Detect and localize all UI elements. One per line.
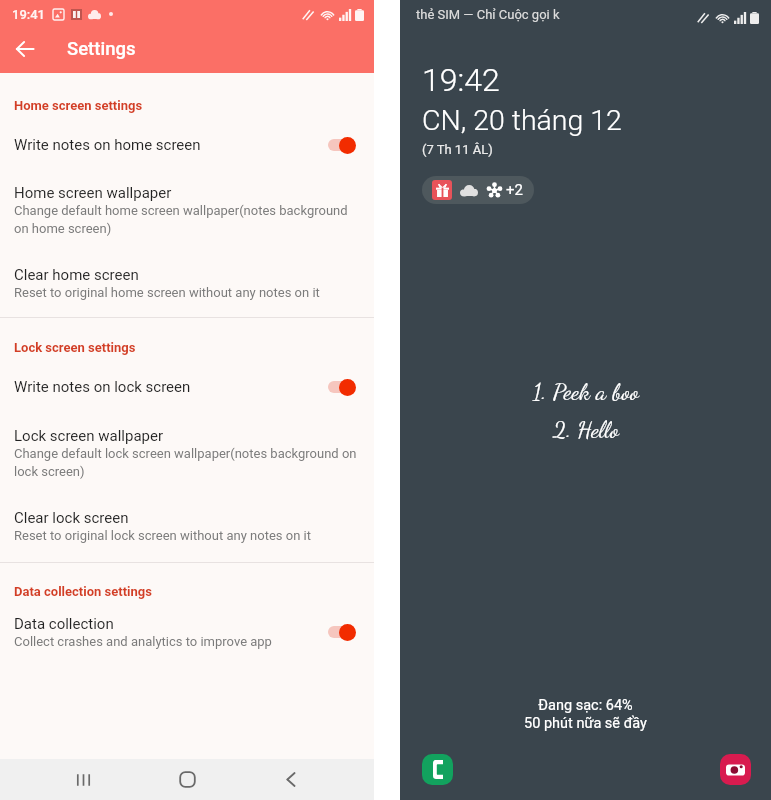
staticText: +2 (506, 181, 523, 199)
staticText: 1. Peek a boo (533, 377, 639, 405)
button[interactable]: Clear home screen (0, 266, 374, 300)
staticText: Settings (67, 38, 136, 60)
button[interactable]: Data collection (0, 615, 374, 649)
staticText: thẻ SIM — Chỉ Cuộc gọi k (416, 7, 560, 22)
button[interactable]: Back (4, 28, 46, 69)
staticText: CN, 20 tháng 12 (422, 104, 622, 137)
staticText: Home screen wallpaper (14, 184, 172, 202)
button[interactable]: Lock screen wallpaper (0, 427, 374, 479)
button[interactable]: Home screen wallpaper (0, 184, 374, 236)
staticText: Data collection (14, 615, 114, 633)
button[interactable]: Clear lock screen (0, 509, 374, 543)
staticText: Clear lock screen (14, 509, 129, 527)
button[interactable]: +2 (422, 176, 534, 204)
button[interactable]: Recent apps (63, 759, 104, 800)
button[interactable]: Back (270, 759, 311, 800)
staticText: Write notes on home screen (14, 136, 327, 154)
staticText: Lock screen settings (14, 340, 136, 355)
staticText: Data collection settings (14, 584, 152, 599)
button[interactable]: Phone (422, 754, 453, 785)
staticText: Collect crashes and analytics to improve… (14, 634, 272, 649)
staticText: (7 Th 11 ÂL) (422, 142, 493, 157)
staticText: Change default home screen wallpaper(not… (14, 203, 361, 236)
staticText: Change default lock screen wallpaper(not… (14, 446, 361, 479)
staticText: Lock screen wallpaper (14, 427, 164, 445)
staticText: Clear home screen (14, 266, 139, 284)
button[interactable]: Home (167, 759, 208, 800)
staticText: Home screen settings (14, 98, 143, 113)
staticText: 50 phút nữa sẽ đầy (524, 715, 647, 732)
staticText: Reset to original home screen without an… (14, 285, 320, 300)
button[interactable]: Write notes on home screen (0, 135, 374, 155)
staticText: Write notes on lock screen (14, 378, 327, 396)
staticText: Đang sạc: 64% (538, 697, 633, 714)
staticText: 2. Hello (553, 415, 619, 443)
staticText: Reset to original lock screen without an… (14, 528, 311, 543)
button[interactable]: Camera (720, 754, 751, 785)
button[interactable]: Write notes on lock screen (0, 377, 374, 397)
staticText: 19:41 (12, 7, 46, 22)
staticText: 19:42 (422, 61, 500, 99)
